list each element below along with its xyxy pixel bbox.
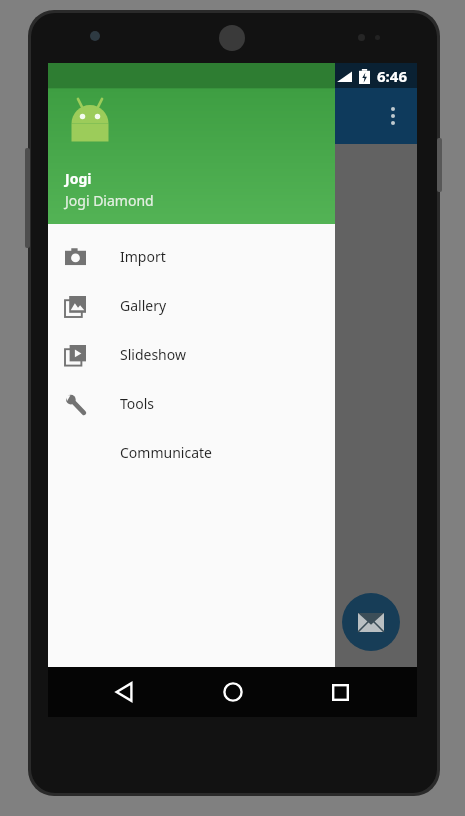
staticText: Jogi [65, 169, 92, 188]
staticText: Slideshow [120, 345, 186, 364]
button[interactable]: Back [95, 667, 155, 717]
button[interactable]: Gallery [48, 281, 335, 330]
staticText: 6:46 [377, 66, 407, 86]
button[interactable]: Recent apps [310, 667, 370, 717]
staticText: Communicate [120, 443, 212, 462]
button[interactable]: Jogi [48, 63, 335, 224]
button[interactable]: Home [203, 667, 263, 717]
staticText: Gallery [120, 296, 167, 315]
staticText: Jogi Diamond [65, 191, 154, 210]
staticText: Import [120, 247, 166, 266]
button[interactable]: More options [369, 92, 417, 140]
staticText: Tools [120, 394, 155, 413]
button[interactable]: Import [48, 232, 335, 281]
button[interactable]: Slideshow [48, 330, 335, 379]
button[interactable]: Compose email [342, 593, 400, 651]
button[interactable]: Tools [48, 379, 335, 428]
button[interactable]: Communicate [48, 428, 335, 477]
